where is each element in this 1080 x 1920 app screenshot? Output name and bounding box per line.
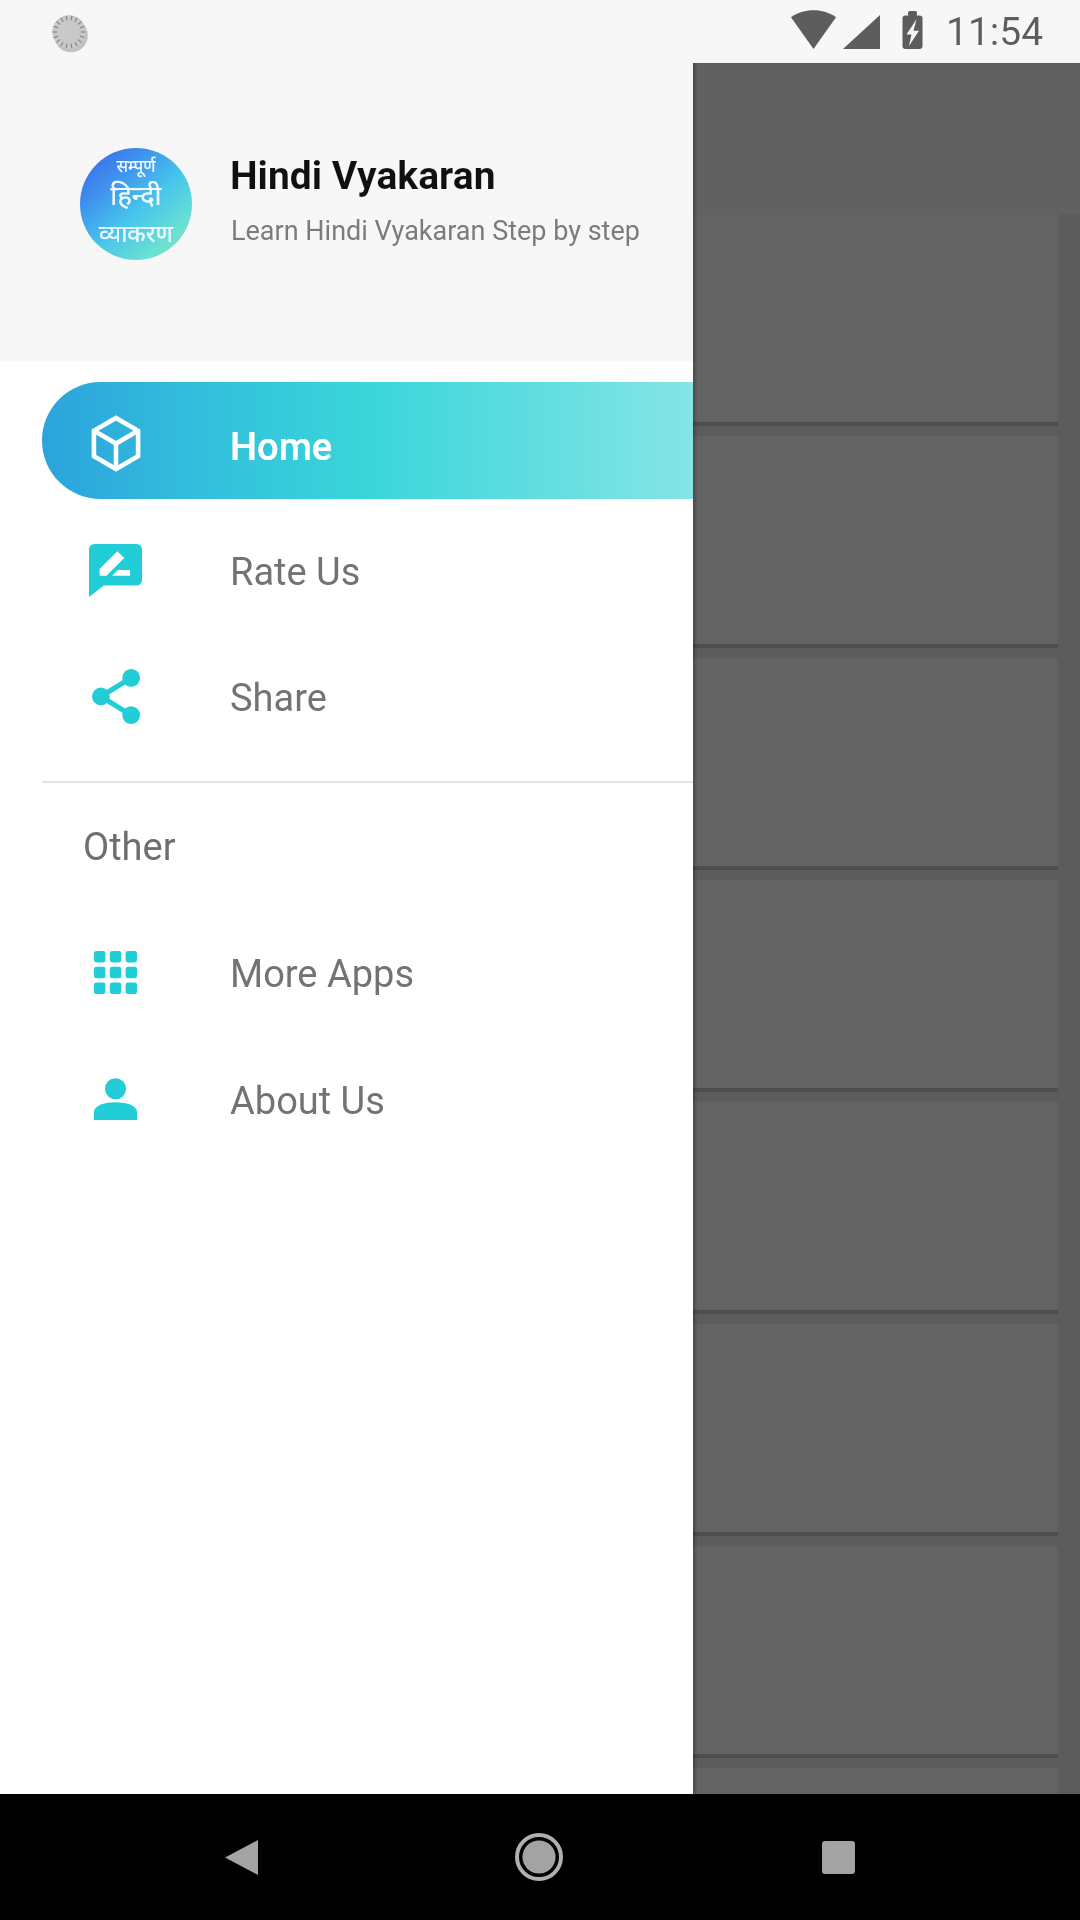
button[interactable]: Recent apps bbox=[768, 1794, 908, 1920]
staticText: व्याकरण bbox=[80, 216, 192, 249]
staticText: Hindi Vyakaran bbox=[230, 153, 496, 199]
staticText: About Us bbox=[230, 1079, 385, 1124]
staticText: सम्पूर्ण bbox=[80, 154, 192, 177]
staticText: More Apps bbox=[230, 952, 415, 997]
button[interactable]: Home bbox=[469, 1794, 609, 1920]
staticText: Rate Us bbox=[230, 550, 361, 595]
button[interactable]: More Apps bbox=[0, 909, 693, 1035]
staticText: Other bbox=[83, 825, 176, 870]
button[interactable]: Back bbox=[171, 1794, 311, 1920]
button[interactable]: Home bbox=[42, 382, 693, 499]
button[interactable]: About Us bbox=[0, 1036, 693, 1162]
staticText: हिन्दी bbox=[80, 176, 192, 213]
staticText: Share bbox=[230, 676, 327, 721]
button[interactable]: Share bbox=[0, 633, 693, 759]
button[interactable]: Rate Us bbox=[0, 507, 693, 633]
staticText: 11:54 bbox=[946, 9, 1044, 55]
staticText: Learn Hindi Vyakaran Step by step bbox=[231, 215, 640, 247]
staticText: Home bbox=[230, 425, 333, 470]
